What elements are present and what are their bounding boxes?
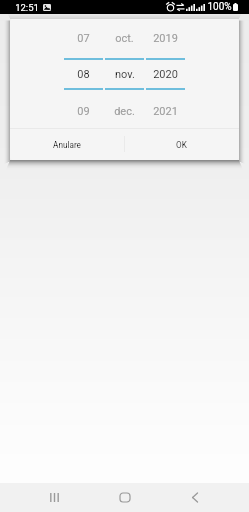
staticText: 09 <box>77 105 90 118</box>
staticText: 08 <box>77 68 90 81</box>
button[interactable]: Recent apps <box>0 483 105 512</box>
staticText: 2019 <box>153 32 178 45</box>
button[interactable]: 2019 <box>146 19 185 58</box>
button[interactable]: 2020 <box>146 60 185 88</box>
staticText: oct. <box>115 32 134 45</box>
button[interactable]: 09 <box>64 90 103 128</box>
staticText: 12:51 <box>15 2 39 13</box>
staticText: 2021 <box>153 105 178 118</box>
staticText: OK <box>176 140 187 150</box>
button[interactable]: OK <box>124 129 239 160</box>
staticText: nov. <box>115 68 135 81</box>
button[interactable]: Home <box>105 483 144 512</box>
button[interactable]: oct. <box>105 19 144 58</box>
button[interactable]: dec. <box>105 90 144 128</box>
button[interactable]: 07 <box>64 19 103 58</box>
staticText: 100% <box>207 1 232 13</box>
staticText: 2020 <box>153 68 178 81</box>
button[interactable]: nov. <box>105 60 144 88</box>
button[interactable]: 2021 <box>146 90 185 128</box>
staticText: Anulare <box>53 140 81 150</box>
staticText: 07 <box>77 32 90 45</box>
button[interactable]: 08 <box>64 60 103 88</box>
staticText: dec. <box>114 105 135 118</box>
button[interactable]: Anulare <box>10 129 124 160</box>
button[interactable]: Back <box>144 483 249 512</box>
